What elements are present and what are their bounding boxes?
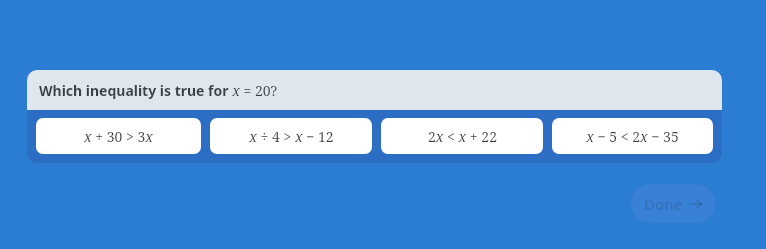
staticText: x + 30 > 3x	[84, 127, 153, 146]
button[interactable]: x + 30 > 3x	[36, 118, 201, 154]
button[interactable]: 2x < x + 22	[381, 118, 543, 154]
staticText: 2x < x + 22	[428, 127, 497, 146]
other: Next	[689, 197, 703, 211]
button[interactable]: x ÷ 4 > x − 12	[210, 118, 372, 154]
staticText: Done	[644, 194, 683, 214]
staticText: Which inequality is true for x = 20?	[39, 81, 278, 100]
button[interactable]: x − 5 < 2x − 35	[552, 118, 713, 154]
staticText: x ÷ 4 > x − 12	[249, 127, 334, 146]
button[interactable]: Done	[631, 184, 715, 223]
staticText: x − 5 < 2x − 35	[586, 127, 679, 146]
